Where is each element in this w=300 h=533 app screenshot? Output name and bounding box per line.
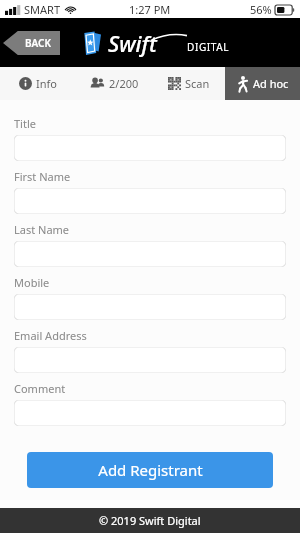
staticText: Info bbox=[36, 76, 57, 91]
staticText: © 2019 Swift Digital bbox=[99, 513, 201, 528]
staticText: 56% bbox=[250, 2, 272, 17]
button[interactable] bbox=[14, 400, 286, 426]
staticText: Email Address bbox=[14, 328, 87, 343]
staticText: Mobile bbox=[14, 275, 50, 290]
staticText: BACK bbox=[25, 36, 51, 50]
staticText: Swift bbox=[108, 28, 157, 58]
staticText: 2/200 bbox=[109, 76, 139, 91]
staticText: First Name bbox=[14, 169, 71, 184]
staticText: DIGITAL bbox=[187, 40, 230, 54]
button[interactable] bbox=[14, 347, 286, 373]
staticText: Last Name bbox=[14, 222, 70, 237]
staticText: Title bbox=[14, 116, 36, 131]
staticText: Scan bbox=[185, 76, 210, 91]
staticText: 1:27 PM bbox=[129, 2, 171, 17]
staticText: Add Registrant bbox=[98, 460, 203, 480]
button[interactable]: Ad hoc bbox=[225, 67, 300, 100]
button[interactable]: Back bbox=[3, 31, 60, 55]
staticText: Comment bbox=[14, 381, 66, 396]
button[interactable] bbox=[14, 188, 286, 214]
button[interactable] bbox=[14, 294, 286, 320]
button[interactable] bbox=[14, 241, 286, 267]
button[interactable]: Scan bbox=[152, 67, 225, 100]
button[interactable]: Add Registrant bbox=[27, 452, 273, 488]
button[interactable] bbox=[14, 135, 286, 161]
button[interactable]: Info bbox=[0, 67, 75, 100]
staticText: SMART bbox=[24, 2, 61, 17]
button[interactable]: 2/200 bbox=[75, 67, 152, 100]
staticText: Ad hoc bbox=[253, 76, 289, 91]
